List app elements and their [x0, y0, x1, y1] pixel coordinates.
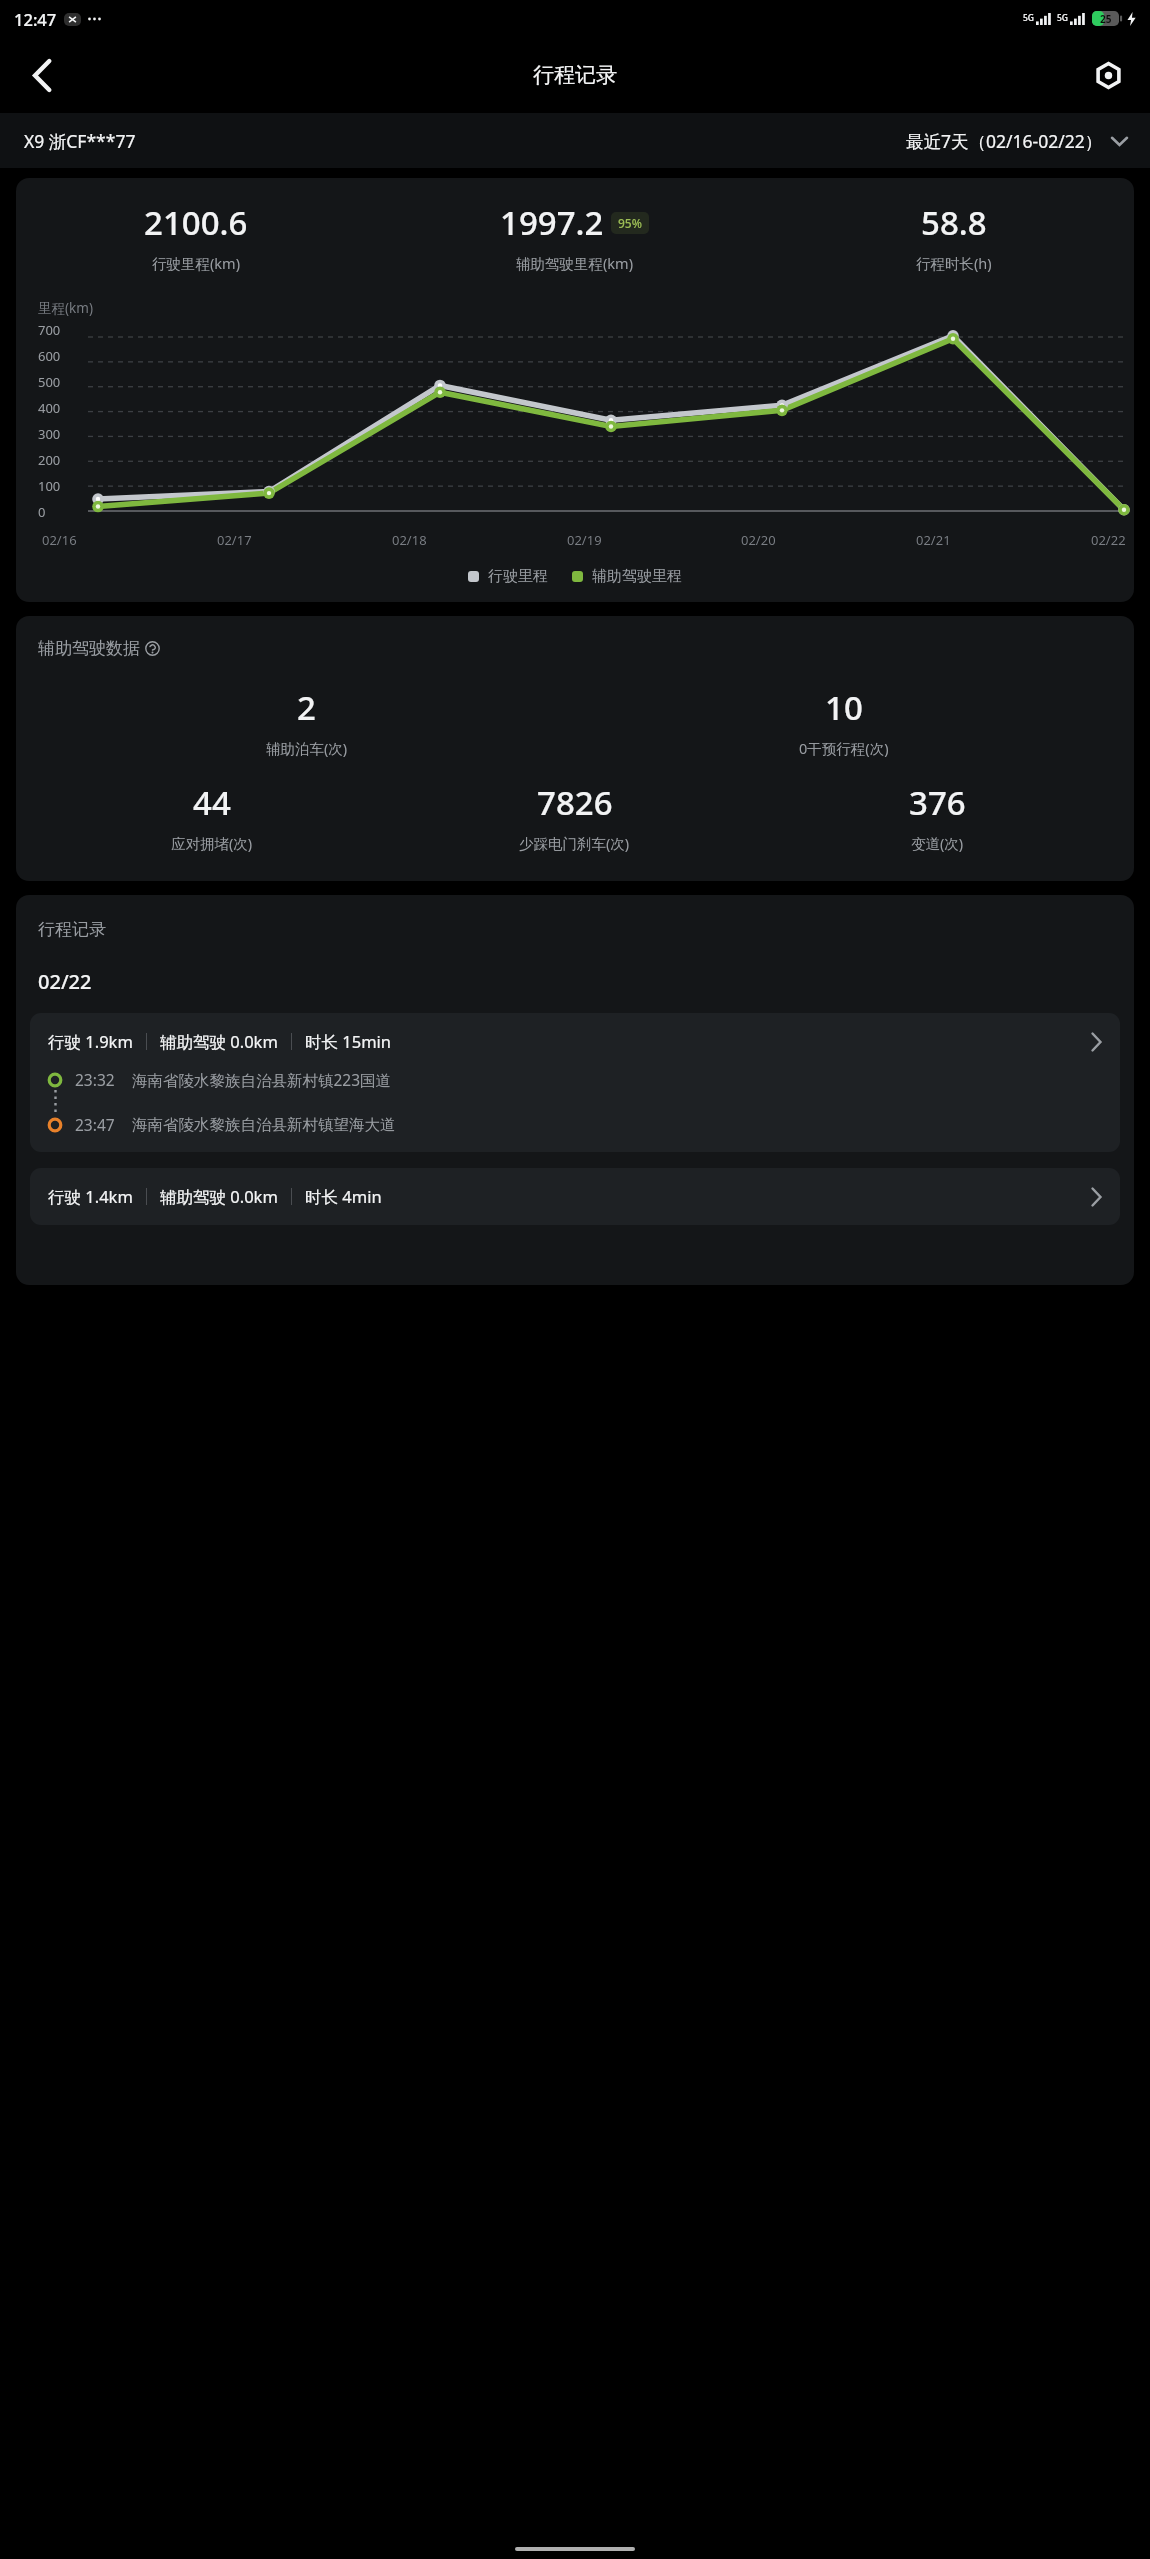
staticText: 02/19	[567, 531, 602, 549]
staticText: 辅助驾驶里程	[592, 567, 682, 586]
staticText: 02/21	[916, 531, 951, 549]
staticText: 25	[1100, 12, 1112, 26]
staticText: 23:47	[75, 1114, 115, 1135]
staticText: 7826	[537, 780, 613, 825]
staticText: 行程记录	[533, 62, 617, 88]
button[interactable]: 2100.6	[16, 178, 1134, 602]
staticText: 12:47	[14, 8, 57, 30]
staticText: 行驶里程	[488, 567, 548, 586]
staticText: 5G	[1057, 12, 1069, 24]
button[interactable]: 行驶 1.9km	[30, 1013, 1120, 1152]
staticText: 辅助泊车(次)	[266, 738, 348, 758]
staticText: 行驶 1.4km	[48, 1185, 133, 1208]
staticText: 辅助驾驶里程(km)	[516, 253, 634, 273]
staticText: 600	[38, 347, 61, 365]
staticText: 02/16	[42, 531, 77, 549]
staticText: 行驶里程(km)	[152, 253, 241, 273]
staticText: 02/20	[741, 531, 776, 549]
staticText: 300	[38, 425, 61, 443]
staticText: 400	[38, 399, 61, 417]
staticText: 海南省陵水黎族自治县新村镇望海大道	[132, 1115, 396, 1135]
staticText: 100	[38, 477, 61, 495]
button[interactable]: 辅助驾驶数据	[16, 616, 1134, 881]
button[interactable]: Settings	[1082, 49, 1134, 101]
staticText: 5G	[1023, 12, 1035, 24]
staticText: 行程记录	[38, 919, 106, 940]
staticText: 10	[825, 685, 863, 730]
staticText: X9 浙CF***77	[24, 129, 136, 153]
staticText: 行程时长(h)	[916, 253, 992, 273]
staticText: 02/18	[392, 531, 427, 549]
staticText: 02/17	[217, 531, 252, 549]
staticText: 0干预行程(次)	[799, 738, 889, 758]
staticText: 1997.2	[500, 200, 604, 245]
staticText: 44	[193, 780, 231, 825]
staticText: 少踩电门刹车(次)	[519, 833, 630, 853]
staticText: 02/22	[1091, 531, 1126, 549]
staticText: 变道(次)	[911, 833, 964, 853]
button[interactable]: Back	[16, 49, 68, 101]
staticText: 最近7天（02/16-02/22）	[906, 129, 1103, 153]
staticText: 02/22	[38, 968, 92, 995]
staticText: 95%	[618, 215, 642, 231]
button[interactable]: 行驶 1.4km	[30, 1168, 1120, 1225]
staticText: 0	[38, 503, 46, 521]
staticText: 700	[38, 321, 61, 339]
staticText: 行驶 1.9km	[48, 1030, 133, 1053]
staticText: 500	[38, 373, 61, 391]
staticText: 23:32	[75, 1069, 115, 1090]
staticText: 海南省陵水黎族自治县新村镇223国道	[132, 1069, 392, 1090]
staticText: 辅助驾驶 0.0km	[160, 1185, 278, 1208]
staticText: 辅助驾驶 0.0km	[160, 1030, 278, 1053]
staticText: 里程(km)	[38, 299, 93, 317]
staticText: 58.8	[921, 200, 987, 245]
staticText: 时长 4min	[305, 1185, 382, 1208]
staticText: 2100.6	[144, 200, 248, 245]
staticText: 辅助驾驶数据	[38, 638, 140, 659]
staticText: 376	[909, 780, 966, 825]
staticText: 200	[38, 451, 61, 469]
staticText: 时长 15min	[305, 1030, 392, 1053]
staticText: 2	[297, 685, 316, 730]
staticText: 应对拥堵(次)	[171, 833, 253, 853]
button[interactable]: X9 浙CF***77	[0, 113, 1150, 168]
